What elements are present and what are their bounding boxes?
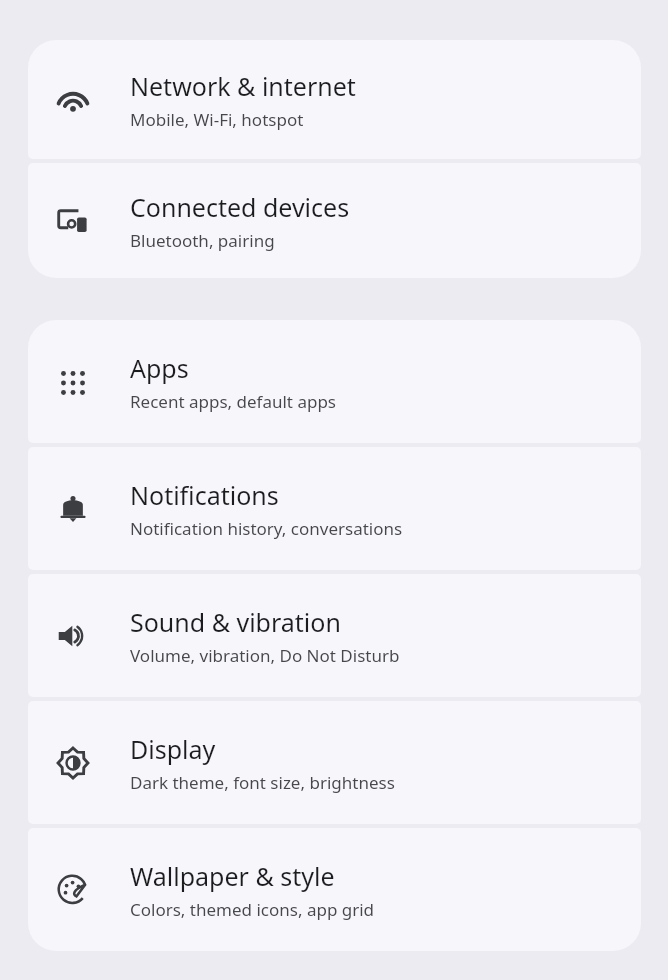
staticText: Sound & vibration — [130, 605, 341, 639]
staticText: Mobile, Wi-Fi, hotspot — [130, 108, 304, 131]
staticText: Recent apps, default apps — [130, 390, 337, 413]
button[interactable]: Network & internet — [28, 40, 641, 159]
staticText: Apps — [130, 351, 189, 385]
staticText: Connected devices — [130, 190, 350, 224]
staticText: Network & internet — [130, 69, 356, 103]
staticText: Dark theme, font size, brightness — [130, 771, 395, 794]
button[interactable]: Notifications — [28, 447, 641, 570]
staticText: Notifications — [130, 478, 279, 512]
staticText: Wallpaper & style — [130, 859, 335, 893]
staticText: Bluetooth, pairing — [130, 229, 275, 252]
button[interactable]: Connected devices — [28, 163, 641, 278]
button[interactable]: Display — [28, 701, 641, 824]
staticText: Display — [130, 732, 216, 766]
staticText: Colors, themed icons, app grid — [130, 898, 375, 921]
button[interactable]: Wallpaper & style — [28, 828, 641, 951]
staticText: Volume, vibration, Do Not Disturb — [130, 644, 400, 667]
button[interactable]: Sound & vibration — [28, 574, 641, 697]
staticText: Notification history, conversations — [130, 517, 403, 540]
button[interactable]: Apps — [28, 320, 641, 443]
